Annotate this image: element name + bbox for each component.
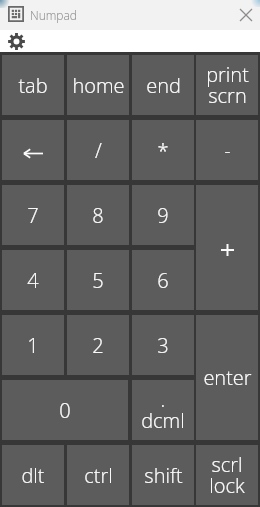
staticText: shift bbox=[144, 462, 183, 489]
button[interactable]: - bbox=[196, 120, 258, 180]
staticText: 7 bbox=[27, 202, 39, 229]
button[interactable]: enter bbox=[196, 315, 258, 440]
staticText: enter bbox=[203, 364, 252, 391]
button[interactable]: Backspace bbox=[2, 120, 64, 180]
button[interactable]: Close bbox=[232, 0, 260, 30]
button[interactable]: 0 bbox=[2, 380, 128, 440]
button[interactable]: 2 bbox=[67, 315, 129, 375]
button[interactable]: print scrn bbox=[196, 55, 258, 115]
button[interactable]: 3 bbox=[132, 315, 194, 375]
staticText: ctrl bbox=[84, 462, 113, 489]
button[interactable]: Settings bbox=[5, 30, 27, 52]
staticText: Numpad bbox=[30, 7, 77, 23]
staticText: * bbox=[157, 137, 169, 164]
staticText: . dcml bbox=[141, 386, 185, 434]
button[interactable]: / bbox=[67, 120, 129, 180]
staticText: 6 bbox=[157, 267, 169, 294]
staticText: 1 bbox=[27, 332, 39, 359]
button[interactable]: 9 bbox=[132, 185, 194, 245]
staticText: end bbox=[146, 72, 181, 99]
staticText: home bbox=[72, 72, 125, 99]
staticText: / bbox=[95, 137, 102, 164]
staticText: scrl lock bbox=[209, 451, 245, 499]
button[interactable]: scrl lock bbox=[196, 445, 258, 505]
staticText: 9 bbox=[157, 202, 169, 229]
staticText: 2 bbox=[92, 332, 104, 359]
staticText: tab bbox=[18, 72, 48, 99]
button[interactable]: . dcml bbox=[132, 380, 194, 440]
button[interactable]: home bbox=[67, 55, 129, 115]
button[interactable]: 7 bbox=[2, 185, 64, 245]
button[interactable]: ctrl bbox=[67, 445, 129, 505]
staticText: 4 bbox=[27, 267, 39, 294]
button[interactable]: 4 bbox=[2, 250, 64, 310]
button[interactable]: Plus bbox=[196, 185, 258, 310]
button[interactable]: end bbox=[132, 55, 194, 115]
staticText: print scrn bbox=[206, 61, 249, 109]
button[interactable]: * bbox=[132, 120, 194, 180]
button[interactable]: shift bbox=[132, 445, 194, 505]
button[interactable]: dlt bbox=[2, 445, 64, 505]
button[interactable]: 6 bbox=[132, 250, 194, 310]
staticText: - bbox=[224, 137, 231, 164]
button[interactable]: 8 bbox=[67, 185, 129, 245]
button[interactable]: 5 bbox=[67, 250, 129, 310]
staticText: 3 bbox=[157, 332, 169, 359]
button[interactable]: tab bbox=[2, 55, 64, 115]
staticText: 5 bbox=[92, 267, 104, 294]
button[interactable]: 1 bbox=[2, 315, 64, 375]
staticText: 0 bbox=[59, 397, 71, 424]
staticText: 8 bbox=[92, 202, 104, 229]
staticText: dlt bbox=[21, 462, 45, 489]
